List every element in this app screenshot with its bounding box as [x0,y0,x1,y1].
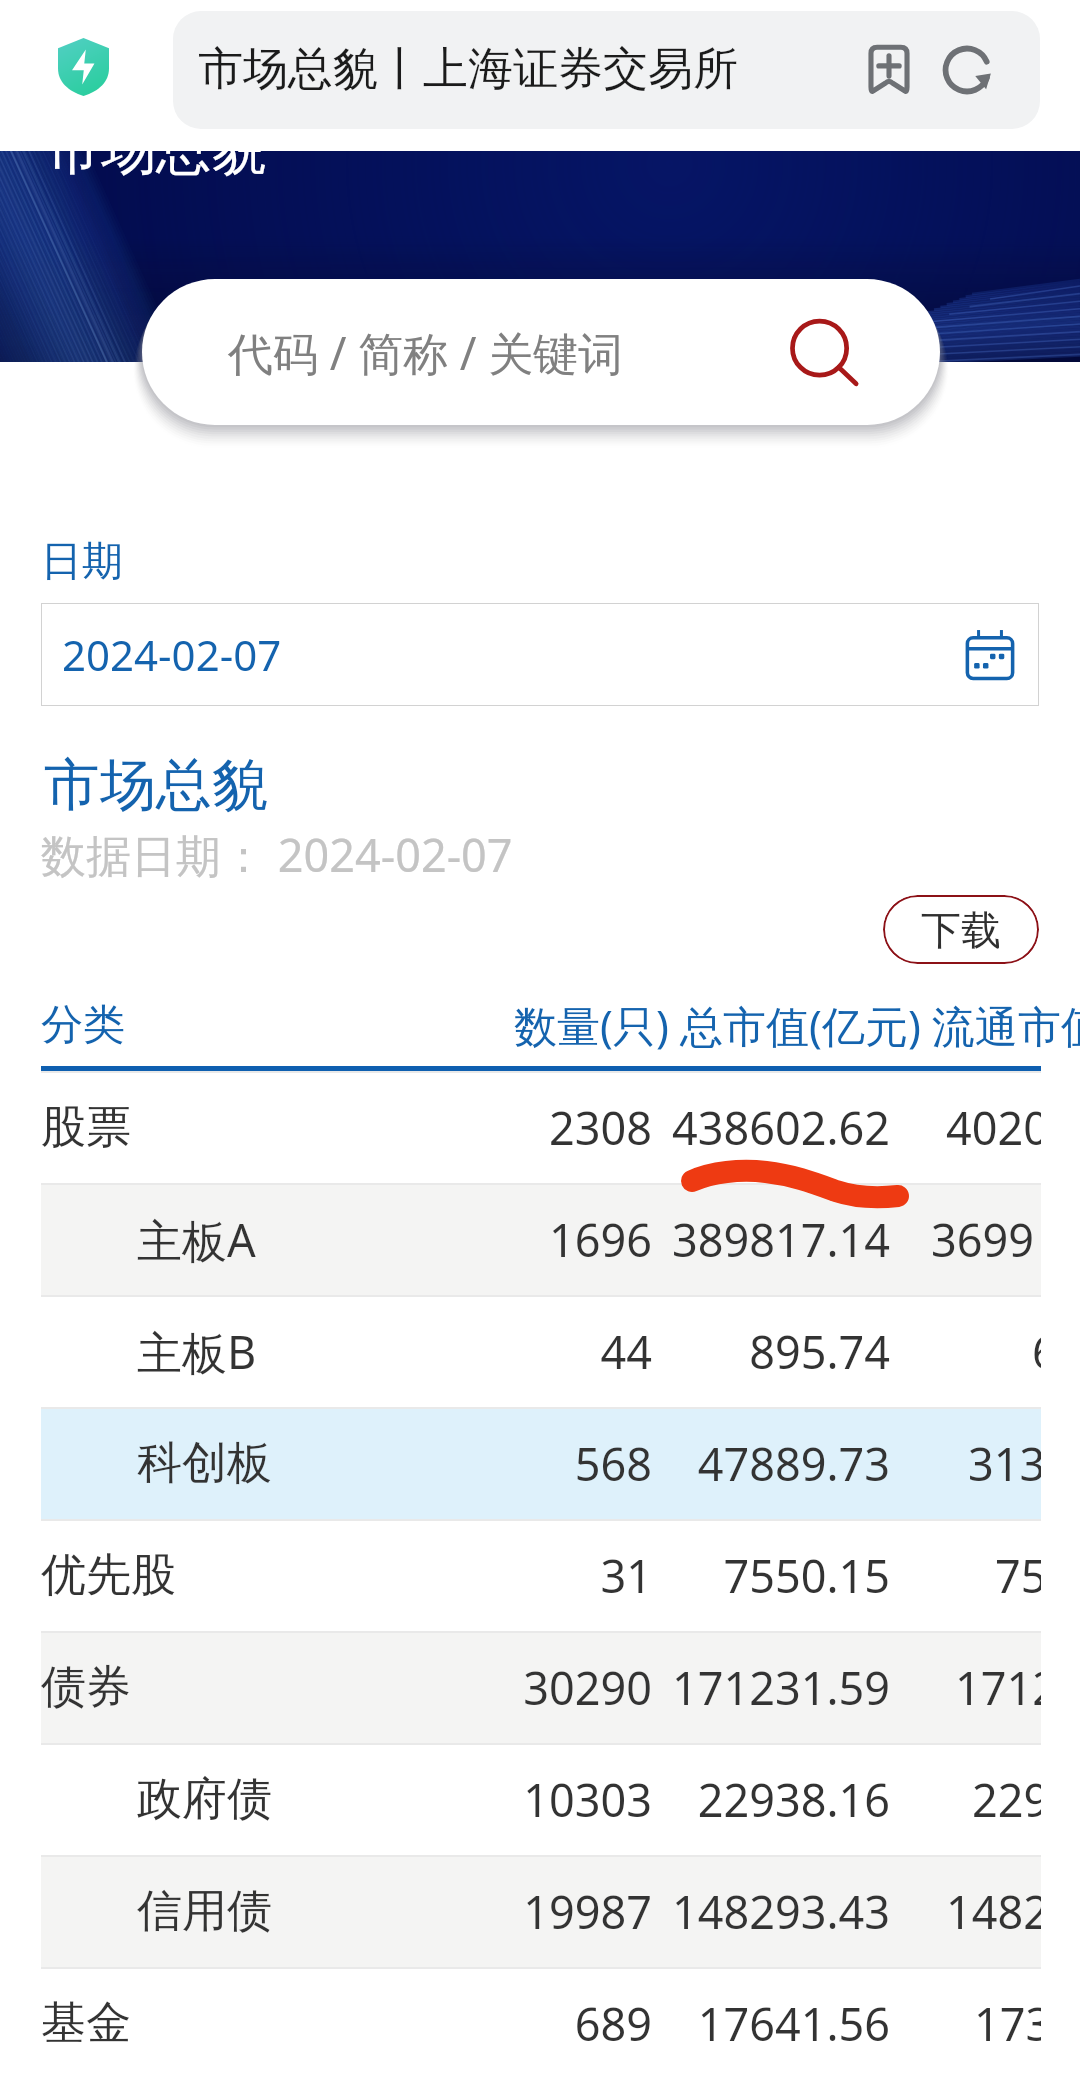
staticText: 2024-02-07 [62,626,282,683]
staticText: 优先股 [41,1547,176,1604]
staticText: 主板A [137,1209,256,1270]
staticText: 数据日期： 2024-02-07 [41,824,513,885]
staticText: 10303 [412,1769,652,1830]
staticText: 19987 [412,1881,652,1942]
staticText: 31 [412,1545,652,1606]
button[interactable]: 信用债 [41,1855,1041,1967]
button[interactable]: 市场总貌丨上海证券交易所 [173,11,1040,129]
staticText: 市场总貌 [46,151,266,184]
button[interactable]: 代码 / 简称 / 关键词 [142,279,940,425]
staticText: 市场总貌 [44,750,268,821]
button[interactable]: Choose date [964,629,1016,681]
staticText: 22938.16 [664,1769,890,1830]
staticText: 313 [968,1433,1041,1494]
staticText: 市场总貌丨上海证券交易所 [198,41,738,98]
staticText: 568 [412,1433,652,1494]
staticText: 895.74 [664,1321,890,1382]
button[interactable]: Refresh [933,36,1001,104]
staticText: 主板B [137,1321,257,1382]
staticText: 148293.43 [664,1881,890,1942]
staticText: 信用债 [137,1883,272,1940]
button[interactable]: 债券 [41,1631,1041,1743]
button[interactable]: 科创板 [41,1407,1041,1519]
button[interactable]: 2024-02-07 [41,603,1039,706]
staticText: 171231.59 [664,1657,890,1718]
staticText: 438602.62 [664,1097,890,1158]
staticText: 下载 [921,905,1001,955]
staticText: 7550.15 [664,1545,890,1606]
other: Secure connection [58,38,109,96]
staticText: 分类 [41,999,125,1052]
button[interactable]: Add bookmark [855,36,923,104]
staticText: 股票 [41,1099,131,1156]
button[interactable]: 主板B [41,1295,1041,1407]
staticText: 基金 [41,1995,131,2052]
staticText: 44 [412,1321,652,1382]
button[interactable]: 主板A [41,1183,1041,1295]
staticText: 债券 [41,1659,131,1716]
staticText: 689 [412,1993,652,2054]
staticText: 日期 [41,536,123,588]
button[interactable]: Search [777,309,863,395]
staticText: 30290 [412,1657,652,1718]
staticText: 科创板 [137,1435,272,1492]
staticText: 政府债 [137,1771,272,1828]
staticText: 1696 [412,1209,652,1270]
staticText: 75 [995,1545,1041,1606]
button[interactable]: 下载 [883,895,1039,964]
staticText: 6 [1032,1321,1041,1382]
staticText: 3699 [931,1209,1034,1270]
button[interactable]: 基金 [41,1967,1041,2079]
staticText: 4020 [946,1097,1041,1158]
button[interactable]: 股票 [41,1071,1041,1183]
button[interactable]: 优先股 [41,1519,1041,1631]
staticText: 47889.73 [664,1433,890,1494]
staticText: 数量(只) 总市值(亿元) 流通市值 [514,996,1080,1055]
staticText: 229 [972,1769,1041,1830]
staticText: 代码 / 简称 / 关键词 [228,322,624,383]
button[interactable]: 政府债 [41,1743,1041,1855]
staticText: 389817.14 [664,1209,890,1270]
staticText: 173 [974,1993,1041,2054]
staticText: 17641.56 [664,1993,890,2054]
staticText: 2308 [412,1097,652,1158]
staticText: 1482 [946,1881,1041,1942]
staticText: 1712 [955,1657,1041,1718]
